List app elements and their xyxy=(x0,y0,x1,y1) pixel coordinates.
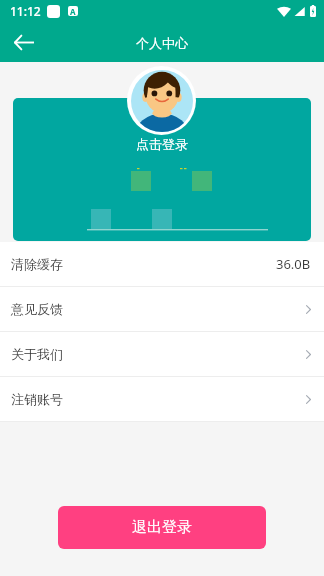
staticText: 注销账号 xyxy=(11,391,63,407)
staticText: 意见反馈 xyxy=(11,301,63,317)
staticText: 个人中心 xyxy=(136,35,188,51)
button[interactable]: 退出登录 xyxy=(58,506,266,549)
staticText: A xyxy=(70,6,76,16)
staticText: 点击登录 xyxy=(136,136,188,152)
button[interactable]: 注销账号 xyxy=(0,377,324,422)
button[interactable]: 点击登录 xyxy=(13,98,311,241)
button[interactable]: Back xyxy=(8,26,40,58)
staticText: 关于我们 xyxy=(11,346,63,362)
staticText: 退出登录 xyxy=(132,518,192,537)
staticText: 36.0B xyxy=(276,255,311,273)
staticText: 11:12 xyxy=(10,3,41,19)
button[interactable]: 清除缓存 xyxy=(0,242,324,287)
staticText: 清除缓存 xyxy=(11,256,63,272)
button[interactable]: 意见反馈 xyxy=(0,287,324,332)
button[interactable]: 关于我们 xyxy=(0,332,324,377)
button[interactable]: User avatar xyxy=(127,66,196,135)
